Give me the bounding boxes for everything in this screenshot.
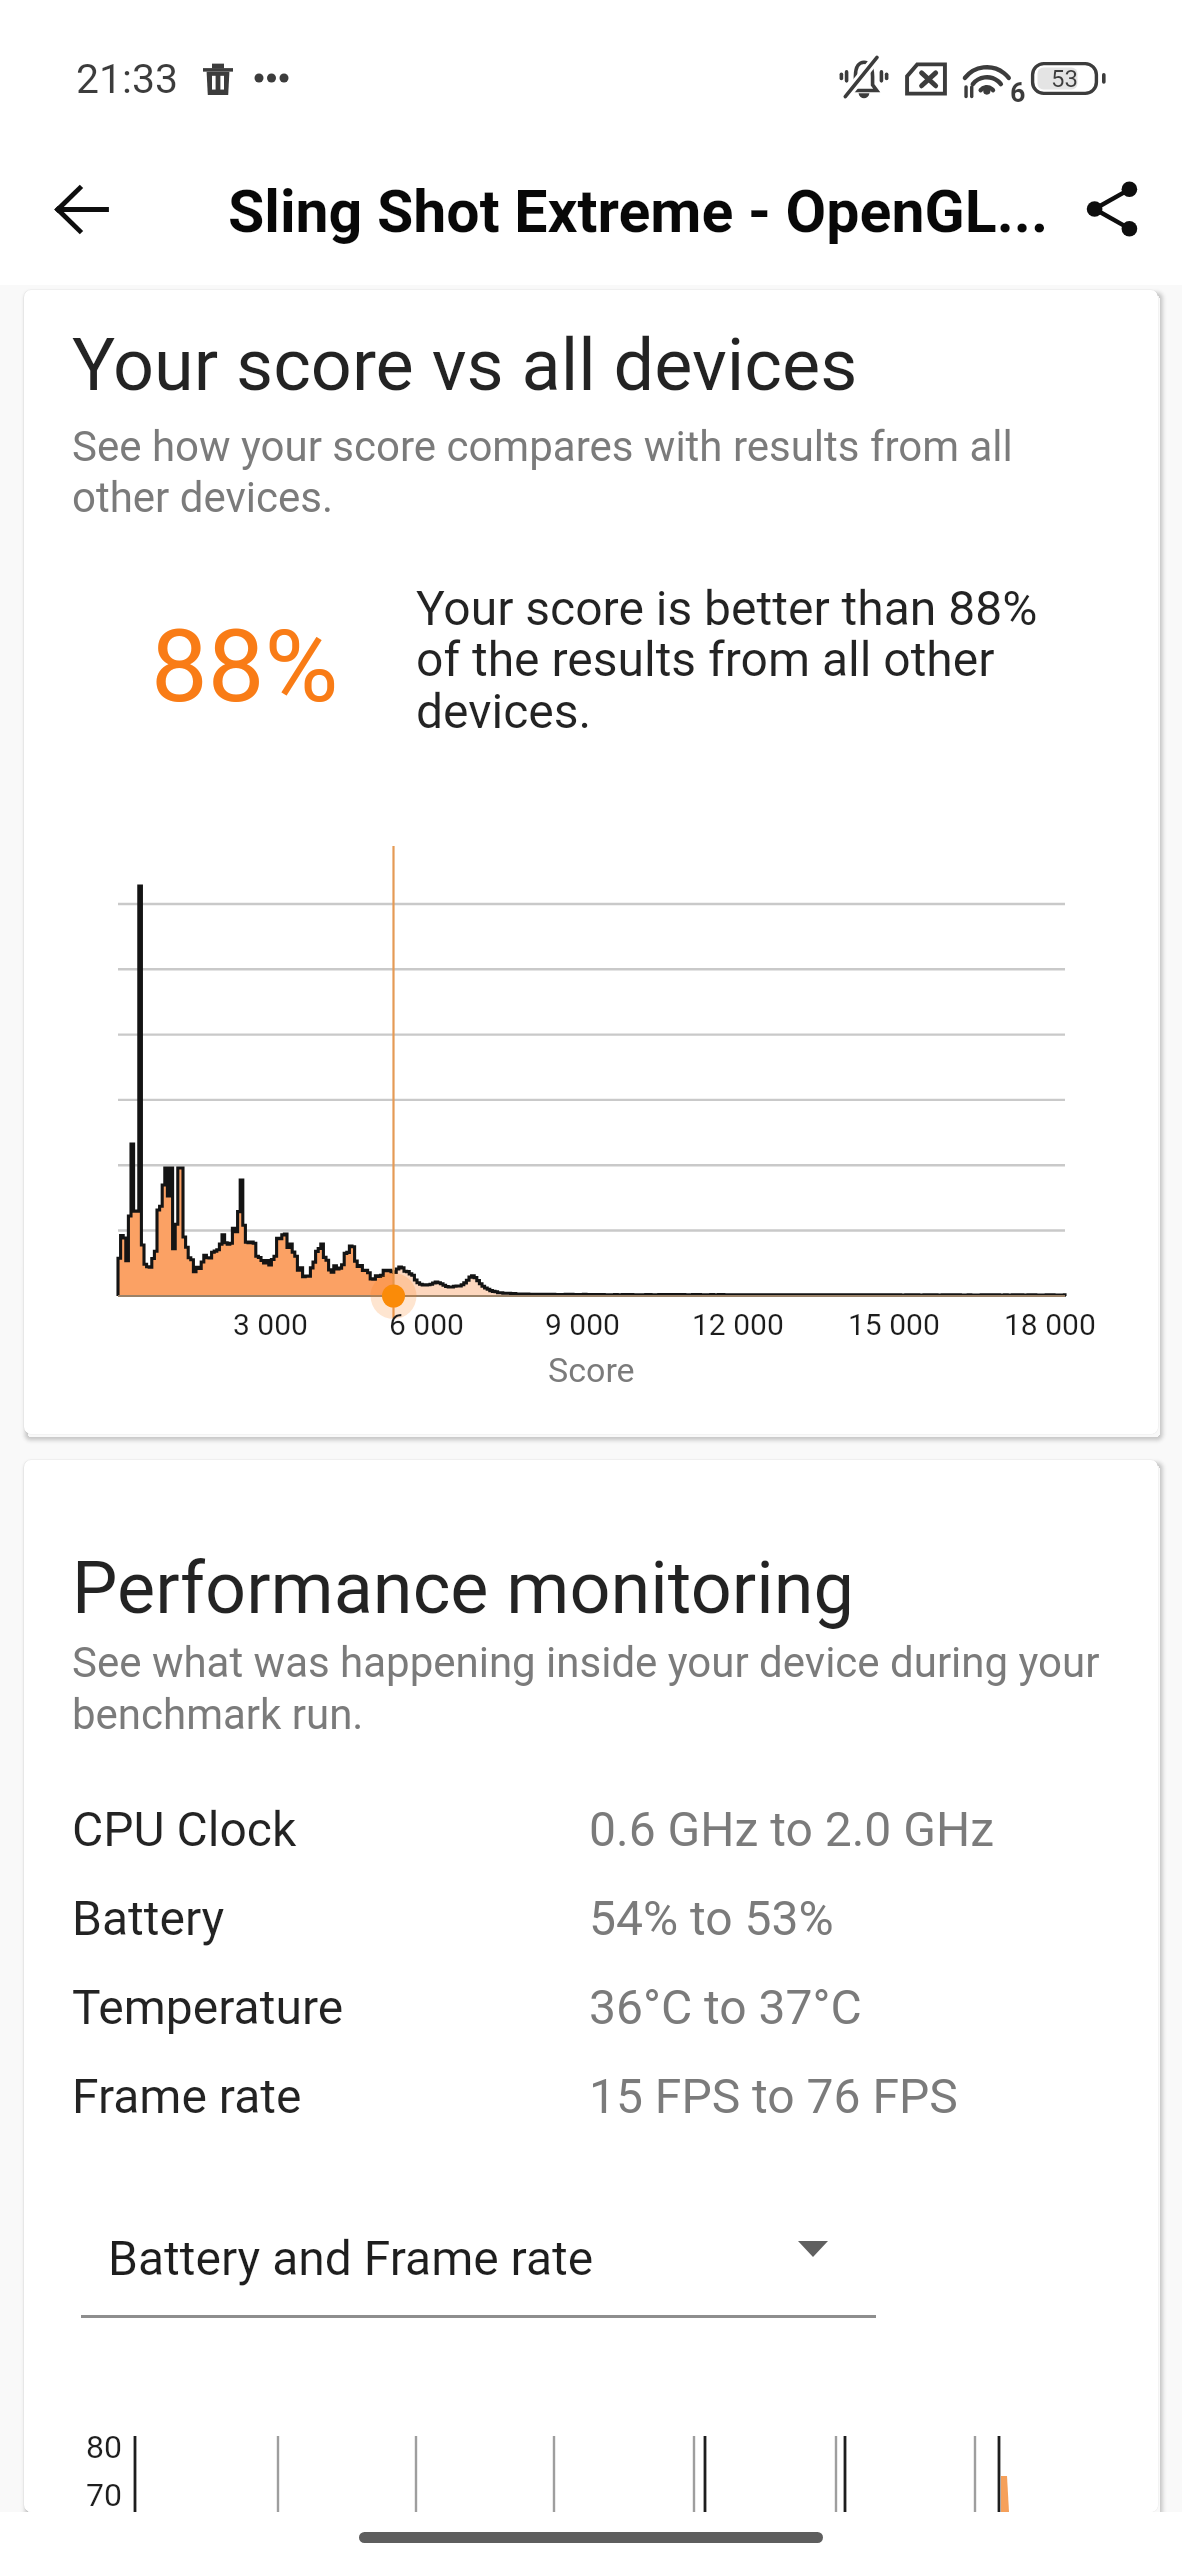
staticText: 80	[86, 2428, 122, 2466]
staticText: Your score vs all devices	[72, 323, 858, 407]
button[interactable]: Performance monitoring	[24, 1460, 1158, 2512]
button[interactable]: Share	[1062, 159, 1162, 259]
staticText: 0.6 GHz to 2.0 GHz	[589, 1801, 994, 1857]
staticText: 15 000	[848, 1307, 940, 1342]
staticText: Performance monitoring	[72, 1546, 854, 1630]
staticText: 12 000	[692, 1307, 784, 1342]
button[interactable]: Battery and Frame rate	[81, 2212, 876, 2316]
staticText: See what was happening inside your devic…	[72, 1638, 1158, 1739]
staticText: Frame rate	[72, 2068, 589, 2124]
staticText: Your score is better than 88% of the res…	[416, 580, 1056, 740]
button[interactable]: Your score vs all devices	[24, 290, 1158, 1434]
staticText: Battery and Frame rate	[108, 2230, 594, 2286]
staticText: Score	[548, 1350, 635, 1390]
staticText: 88%	[151, 607, 339, 725]
staticText: 9 000	[545, 1307, 620, 1342]
staticText: Battery	[72, 1890, 589, 1946]
staticText: 6 000	[389, 1307, 464, 1342]
staticText: 3 000	[233, 1307, 308, 1342]
staticText: Sling Shot Extreme - OpenGL...	[228, 177, 1049, 246]
staticText: 21:33	[76, 55, 179, 103]
staticText: 18 000	[1004, 1307, 1096, 1342]
staticText: 15 FPS to 76 FPS	[589, 2068, 958, 2124]
staticText: 54% to 53%	[589, 1890, 834, 1946]
staticText: See how your score compares with results…	[72, 422, 1112, 523]
staticText: 70	[86, 2476, 122, 2512]
staticText: 36°C to 37°C	[589, 1979, 862, 2035]
staticText: CPU Clock	[72, 1801, 589, 1857]
staticText: Temperature	[72, 1979, 589, 2035]
staticText: 53	[1051, 65, 1078, 93]
button[interactable]: Back	[32, 159, 132, 259]
staticText: 6	[1010, 77, 1026, 109]
